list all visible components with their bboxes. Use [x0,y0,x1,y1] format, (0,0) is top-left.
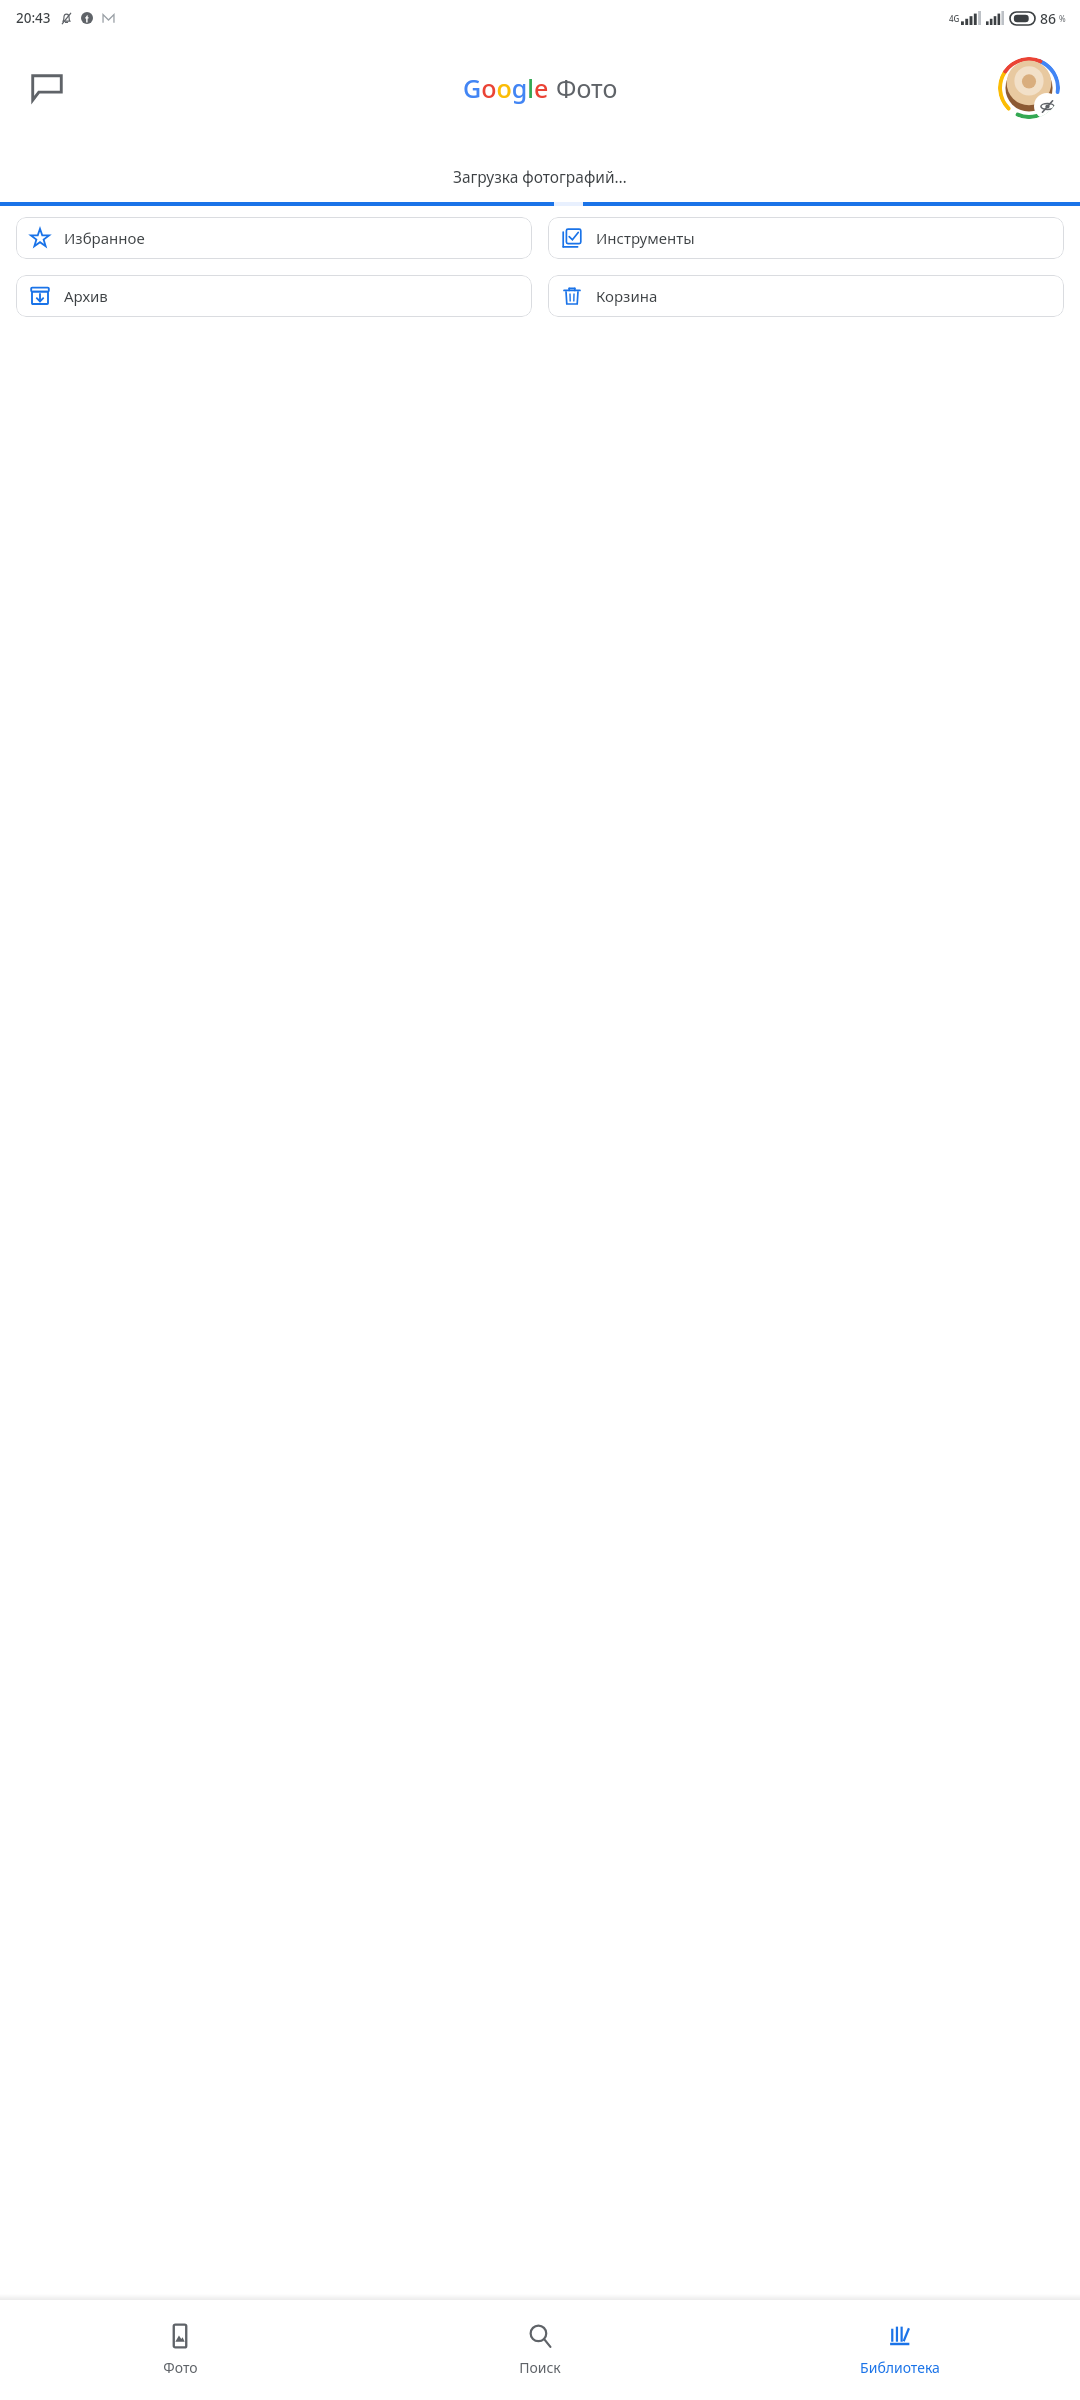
button[interactable]: Аккаунт [998,57,1060,119]
staticText: Загрузка фотографий… [453,166,627,187]
button[interactable]: Архив [16,275,532,317]
staticText: % [1059,13,1066,24]
button[interactable]: Избранное [16,217,532,259]
staticText: Корзина [596,286,658,306]
staticText: Фото [163,2358,198,2377]
button[interactable]: Корзина [548,275,1064,317]
staticText: Google [463,71,549,105]
button[interactable]: Поиск [360,2300,720,2400]
staticText: Поиск [519,2358,561,2377]
button[interactable]: Фото [0,2300,360,2400]
button[interactable]: Библиотека [720,2300,1080,2400]
button[interactable]: Чат [18,59,76,117]
staticText: 4G [949,13,960,24]
button[interactable]: Инструменты [548,217,1064,259]
staticText: Инструменты [596,228,695,248]
staticText: Фото [556,71,618,105]
staticText: Библиотека [860,2358,940,2377]
staticText: Избранное [64,228,145,248]
staticText: 86 [1040,9,1057,28]
staticText: Архив [64,286,108,306]
staticText: 20:43 [16,9,51,27]
